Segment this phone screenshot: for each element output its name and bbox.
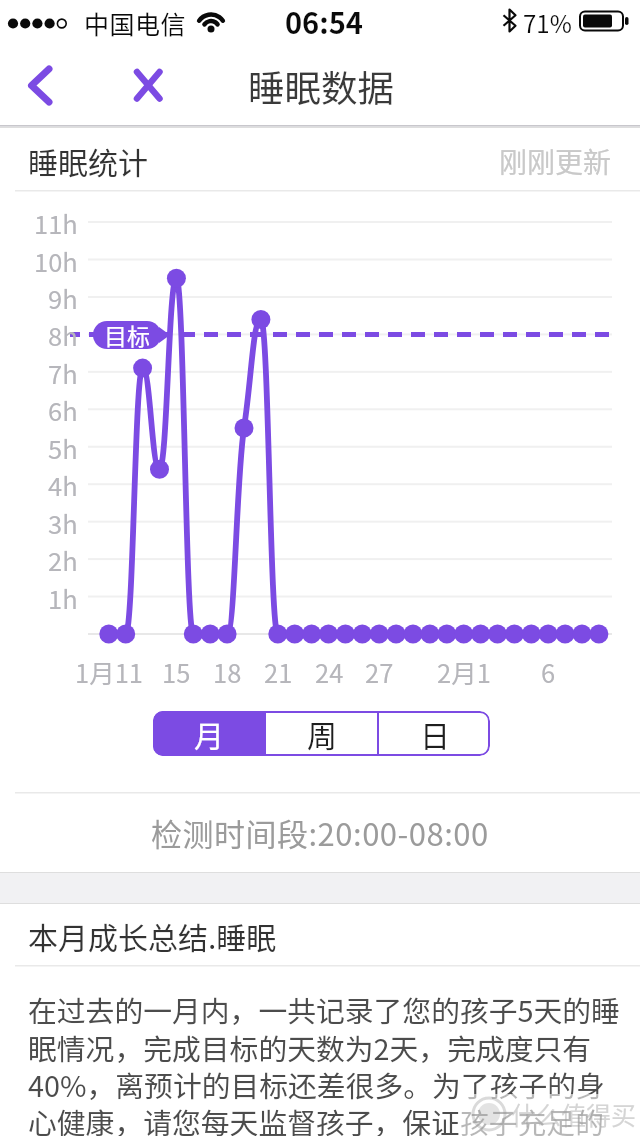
staticText: 检测时间段:20:00-08:00	[151, 810, 489, 855]
staticText: 6h	[48, 391, 78, 428]
staticText: 15	[162, 653, 191, 690]
staticText: 什么值得买	[511, 1096, 637, 1132]
staticText: 刚刚更新	[499, 141, 612, 182]
staticText: 本月成长总结.睡眠	[28, 914, 277, 957]
staticText: 1月11	[75, 653, 143, 690]
staticText: 11h	[34, 204, 78, 241]
staticText: 7h	[48, 354, 78, 391]
staticText: 5h	[48, 429, 78, 466]
staticText: 中国电信	[84, 5, 187, 41]
staticText: 1h	[48, 579, 78, 616]
staticText: 9h	[48, 279, 78, 316]
staticText: 日	[420, 712, 450, 755]
staticText: 06:54	[285, 0, 363, 42]
button[interactable]	[16, 56, 72, 112]
staticText: 8h	[48, 316, 78, 353]
staticText: 睡眠统计	[28, 139, 148, 182]
staticText: 眠情况，完成目标的天数为2天，完成度只有	[28, 1027, 592, 1069]
staticText: 40%，离预计的目标还差很多。为了孩子的身	[28, 1064, 605, 1106]
staticText: 心健康，请您每天监督孩子，保证孩子充足的	[28, 1101, 604, 1136]
staticText: 睡眠数据	[248, 60, 394, 108]
staticText: 周	[307, 712, 337, 755]
staticText: 10h	[34, 242, 78, 279]
staticText: 3h	[48, 504, 78, 541]
button[interactable]	[120, 56, 176, 112]
staticText: 在过去的一月内，一共记录了您的孩子5天的睡	[28, 989, 620, 1031]
staticText: 目标	[104, 318, 150, 351]
staticText: 18	[213, 653, 242, 690]
button[interactable]: 日	[379, 711, 490, 756]
staticText: 2h	[48, 541, 78, 578]
staticText: 4h	[48, 466, 78, 503]
staticText: 27	[365, 653, 394, 690]
staticText: 71%	[523, 5, 572, 40]
staticText: 24	[315, 653, 344, 690]
staticText: 2月1	[437, 653, 491, 690]
staticText: 21	[264, 653, 293, 690]
staticText: 月	[194, 712, 224, 755]
button[interactable]: 周	[266, 711, 377, 756]
button[interactable]: 月	[153, 711, 264, 756]
staticText: 6	[541, 653, 556, 690]
